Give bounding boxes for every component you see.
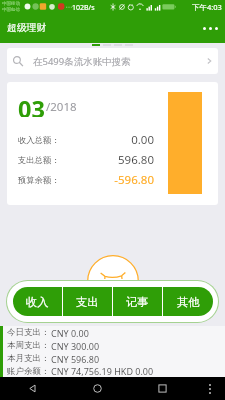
staticText: 预算余额：	[18, 175, 60, 185]
staticText: CNY 0.00	[51, 327, 89, 339]
staticText: 03	[18, 93, 45, 117]
staticText: 0.00	[18, 132, 154, 148]
staticText: 今日支出：	[7, 327, 51, 338]
button[interactable]: Menu	[195, 377, 225, 400]
staticText: 596.80	[18, 152, 154, 168]
staticText: 账户余额：	[7, 366, 51, 377]
button[interactable]: More options	[195, 13, 225, 43]
staticText: 超级理财	[7, 22, 47, 34]
button[interactable]: Recents	[130, 377, 195, 400]
staticText: 收入总额：	[18, 135, 60, 145]
staticText: 中国移动 中国电信	[2, 1, 20, 12]
staticText: 在5499条流水账中搜索	[33, 55, 131, 68]
button[interactable]: Back	[0, 377, 65, 400]
staticText: 支出	[76, 295, 99, 309]
staticText: 其他	[177, 295, 200, 309]
staticText: CNY 596.80	[51, 353, 100, 365]
staticText: 收入	[26, 295, 49, 309]
staticText: -596.80	[18, 172, 154, 188]
staticText: 下午4:03	[192, 2, 222, 12]
button[interactable]: 其他	[163, 287, 213, 316]
button[interactable]: 在5499条流水账中搜索	[7, 48, 218, 74]
staticText: CNY 300.00	[51, 340, 100, 352]
button[interactable]: 支出	[63, 287, 112, 316]
button[interactable]: 记事	[113, 287, 162, 316]
staticText: 记事	[126, 295, 149, 309]
staticText: 支出总额：	[18, 155, 60, 165]
button[interactable]: Home	[65, 377, 130, 400]
staticText: /2018	[46, 99, 77, 115]
staticText: 本周支出：	[7, 340, 51, 351]
button[interactable]: 收入	[13, 287, 62, 316]
staticText: 102B/s	[72, 3, 95, 13]
staticText: 本月支出：	[7, 353, 51, 364]
staticText: CNY 74,756.19 HKD 0.00	[51, 365, 154, 377]
